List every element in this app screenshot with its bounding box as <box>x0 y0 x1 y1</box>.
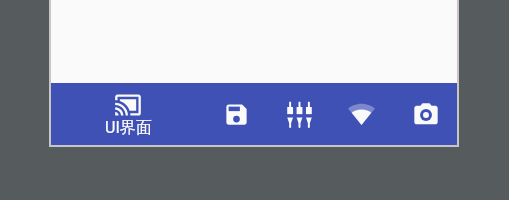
button[interactable]: UI界面 <box>51 83 205 145</box>
button[interactable]: Save <box>205 83 268 145</box>
button[interactable]: Wifi <box>331 83 394 145</box>
button[interactable]: Camera <box>394 83 457 145</box>
staticText: UI界面 <box>105 118 152 138</box>
button[interactable]: Tune <box>268 83 331 145</box>
